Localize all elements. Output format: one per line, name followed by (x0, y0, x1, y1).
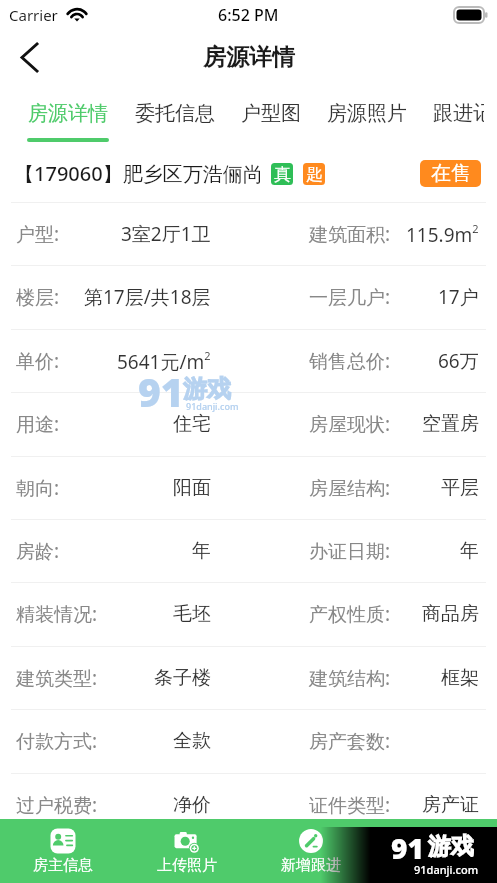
staticText: 91danji.com (186, 400, 239, 412)
staticText: 跟进记录 (433, 101, 484, 126)
staticText: 毛坯 (173, 602, 211, 626)
staticText: 3室2厅1卫 (121, 221, 211, 247)
staticText: 5641元/m2 (117, 348, 211, 374)
staticText: 房龄: (16, 538, 60, 564)
button[interactable]: 上传照片 (125, 819, 249, 883)
button[interactable]: 委托信息 (122, 84, 228, 144)
button[interactable]: 房主信息 (0, 819, 125, 883)
staticText: 6:52 PM (218, 4, 279, 26)
staticText: 一层几户: (309, 284, 391, 310)
staticText: 年 (460, 539, 479, 563)
button[interactable]: 精装情况: (0, 583, 497, 645)
staticText: 上传照片 (157, 856, 217, 875)
staticText: 【179060】肥乡区万浩俪尚 (14, 160, 263, 187)
staticText: 空置房 (422, 412, 479, 436)
staticText: 付款方式: (16, 728, 98, 754)
button[interactable]: 过户税费: (0, 774, 497, 836)
staticText: 在售 (431, 161, 471, 186)
staticText: 框架 (441, 666, 479, 690)
button[interactable]: 房龄: (0, 520, 497, 582)
button[interactable]: 在售 (420, 160, 481, 187)
staticText: 建筑面积: (309, 221, 391, 247)
staticText: 第17层/共18层 (84, 284, 211, 310)
staticText: 房源详情 (28, 101, 108, 126)
staticText: 17户 (438, 284, 479, 310)
staticText: 房屋现状: (309, 411, 391, 437)
staticText: 房主信息 (33, 856, 93, 875)
staticText: 66万 (438, 348, 479, 374)
staticText: 91 (138, 365, 184, 418)
staticText: 用途: (16, 411, 60, 437)
button[interactable]: 房源详情 (14, 84, 122, 144)
staticText: 商品房 (422, 602, 479, 626)
staticText: 户型图 (241, 101, 301, 126)
button[interactable]: 建筑类型: (0, 647, 497, 709)
staticText: 办证日期: (309, 538, 391, 564)
staticText: 建筑类型: (16, 665, 98, 691)
staticText: 新增带看 (405, 856, 465, 875)
staticText: 房屋结构: (309, 475, 391, 501)
staticText: 建筑结构: (309, 665, 391, 691)
staticText: 朝向: (16, 475, 60, 501)
staticText: 单价: (16, 348, 60, 374)
staticText: 过户税费: (16, 792, 98, 818)
button[interactable]: 新增带看 (373, 819, 497, 883)
button[interactable]: 新增跟进 (249, 819, 373, 883)
button[interactable]: 户型: (0, 203, 497, 265)
staticText: 91 (391, 829, 424, 867)
staticText: 销售总价: (309, 348, 391, 374)
staticText: 游戏 (183, 374, 231, 404)
button[interactable]: 用途: (0, 393, 497, 455)
staticText: Carrier (9, 5, 58, 25)
staticText: 游戏 (428, 832, 474, 861)
button[interactable]: 朝向: (0, 457, 497, 519)
staticText: 产权性质: (309, 601, 391, 627)
staticText: 115.9m2 (406, 221, 479, 247)
staticText: 91danji.com (414, 862, 479, 877)
staticText: 房源照片 (327, 101, 407, 126)
staticText: 条子楼 (154, 666, 211, 690)
staticText: 房产套数: (309, 728, 391, 754)
staticText: 委托信息 (135, 101, 215, 126)
button[interactable]: 户型图 (228, 84, 314, 144)
staticText: 匙 (306, 164, 323, 185)
staticText: 年 (192, 539, 211, 563)
staticText: 房产证 (422, 793, 479, 817)
staticText: 真 (274, 164, 291, 185)
staticText: 净价 (173, 793, 211, 817)
staticText: 房源详情 (203, 43, 295, 72)
staticText: 全款 (173, 729, 211, 753)
staticText: 楼层: (16, 284, 60, 310)
button[interactable]: 跟进记录 (420, 84, 497, 144)
button[interactable]: 楼层: (0, 266, 497, 328)
button[interactable]: 单价: (0, 330, 497, 392)
button[interactable]: 房源照片 (314, 84, 420, 144)
button[interactable]: Back (0, 30, 59, 84)
staticText: 平层 (441, 476, 479, 500)
staticText: 阳面 (173, 476, 211, 500)
button[interactable]: 付款方式: (0, 710, 497, 772)
staticText: 证件类型: (309, 792, 391, 818)
staticText: 新增跟进 (281, 856, 341, 875)
staticText: 精装情况: (16, 601, 98, 627)
staticText: 住宅 (173, 412, 211, 436)
staticText: 户型: (16, 221, 60, 247)
